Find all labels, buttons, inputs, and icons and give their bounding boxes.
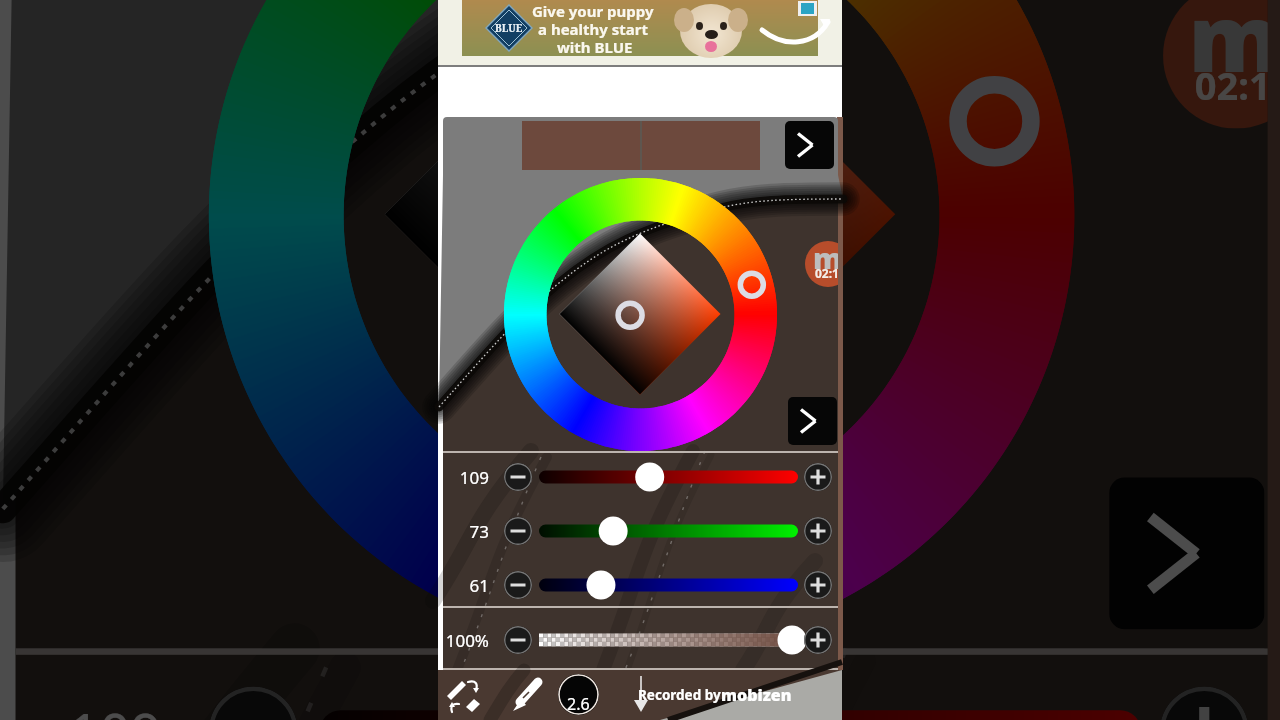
staticText: 109 xyxy=(15,696,161,720)
button[interactable]: Increase xyxy=(1160,686,1249,720)
button[interactable]: Brush size xyxy=(558,674,599,715)
staticText: 2.6 xyxy=(567,693,590,715)
button[interactable]: Next xyxy=(785,121,834,169)
button[interactable]: 109 xyxy=(443,451,838,505)
button[interactable]: Increase xyxy=(804,517,832,545)
button[interactable]: Next xyxy=(1109,477,1264,629)
staticText: 02:13 xyxy=(1195,59,1268,109)
button[interactable]: Decrease xyxy=(504,571,532,599)
button[interactable]: 109 xyxy=(15,648,1268,720)
staticText: a healthy start xyxy=(538,19,649,39)
button[interactable]: 61 xyxy=(443,559,838,613)
button[interactable]: Decrease xyxy=(504,517,532,545)
staticText: m xyxy=(813,241,838,277)
staticText: 02:13 xyxy=(815,265,838,281)
staticText: m xyxy=(1188,0,1268,97)
button[interactable]: Brush xyxy=(504,676,544,716)
staticText: Give your puppy xyxy=(532,1,654,21)
button[interactable]: 100% xyxy=(443,614,838,668)
staticText: 100% xyxy=(443,629,489,652)
button[interactable]: 73 xyxy=(443,505,838,559)
button[interactable]: Decrease xyxy=(504,626,532,654)
staticText: 109 xyxy=(443,466,489,489)
staticText: 73 xyxy=(443,520,489,543)
staticText: mobizen xyxy=(721,684,792,706)
button[interactable]: Increase xyxy=(804,626,832,654)
button[interactable]: Increase xyxy=(804,571,832,599)
staticText: Recorded by xyxy=(638,686,721,704)
button[interactable]: Undo xyxy=(444,678,482,714)
staticText: 61 xyxy=(443,574,489,597)
staticText: BLUE xyxy=(495,21,523,35)
staticText: with BLUE xyxy=(557,37,633,57)
button[interactable]: Decrease xyxy=(209,686,298,720)
button[interactable]: Increase xyxy=(804,463,832,491)
button[interactable]: Advertisement xyxy=(462,0,818,56)
button[interactable]: Next xyxy=(788,397,837,445)
button[interactable]: Decrease xyxy=(504,463,532,491)
